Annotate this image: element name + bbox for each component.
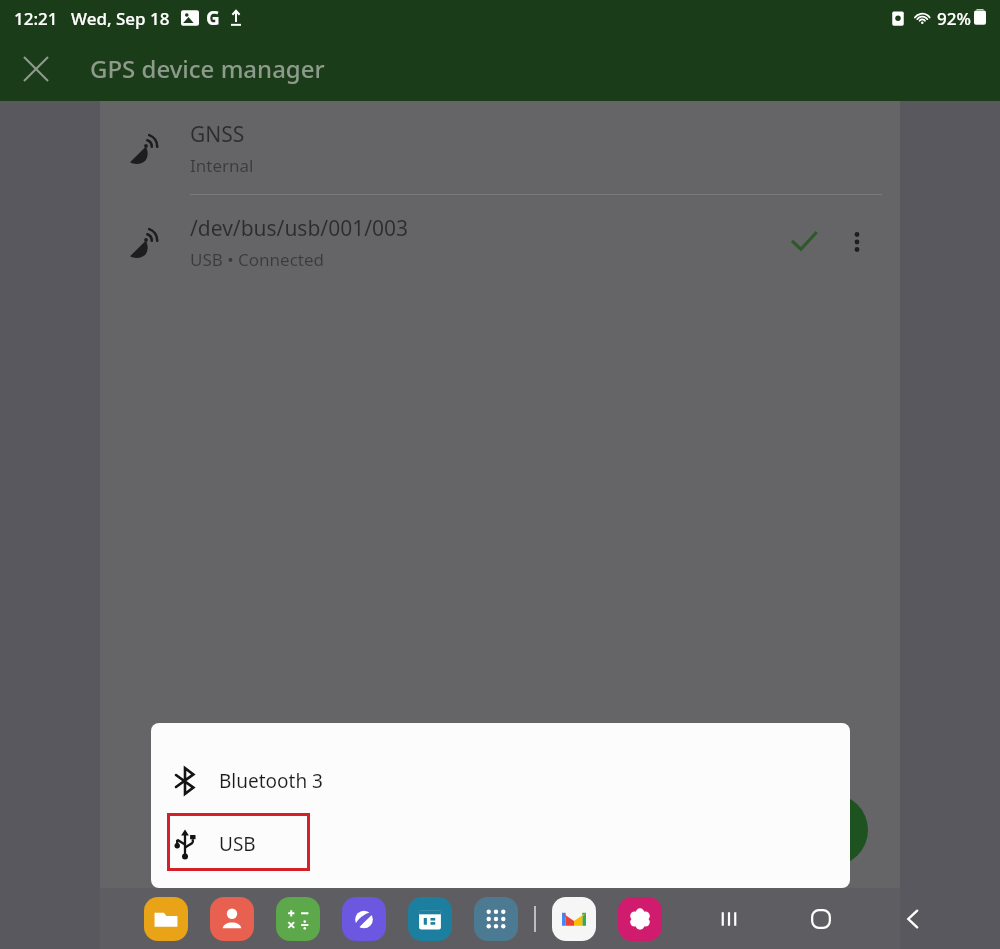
staticText: Internal — [190, 154, 254, 177]
staticText: /dev/bus/usb/001/003 — [190, 214, 409, 243]
button[interactable]: recents — [706, 896, 752, 942]
button[interactable]: App — [276, 897, 320, 941]
button[interactable]: /dev/bus/usb/001/003 — [100, 195, 900, 289]
button[interactable]: GNSS — [100, 101, 900, 195]
button[interactable]: App — [210, 897, 254, 941]
staticText: GNSS — [190, 120, 245, 149]
button[interactable]: App — [474, 897, 518, 941]
button[interactable]: Close — [0, 36, 72, 101]
button[interactable]: App — [144, 897, 188, 941]
button[interactable]: App — [618, 897, 662, 941]
button[interactable]: Home — [798, 896, 844, 942]
button[interactable]: App — [552, 897, 596, 941]
button[interactable]: App — [408, 897, 452, 941]
button[interactable]: Add device — [796, 794, 868, 866]
staticText: USB • Connected — [190, 248, 325, 271]
button[interactable]: Selected — [776, 214, 832, 270]
staticText: Wed, Sep 18 — [71, 7, 170, 30]
button[interactable]: More options — [832, 217, 882, 267]
button[interactable]: Back — [890, 896, 936, 942]
staticText: 92% — [937, 7, 971, 30]
button[interactable]: Bluetooth 3 — [151, 746, 850, 815]
staticText: 12:21 — [14, 7, 58, 30]
staticText: Bluetooth 3 — [219, 768, 323, 794]
button[interactable]: App — [342, 897, 386, 941]
button[interactable]: USB — [151, 813, 850, 875]
staticText: G — [206, 5, 220, 31]
staticText: USB — [219, 831, 256, 857]
staticText: GPS device manager — [90, 52, 325, 85]
